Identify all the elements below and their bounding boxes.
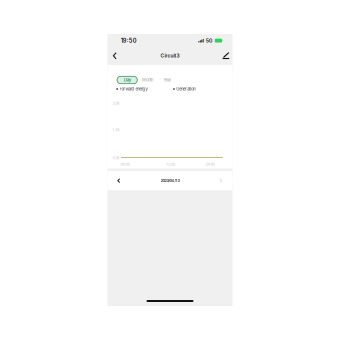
staticText: 24:00 xyxy=(205,162,214,167)
staticText: 2023/04/13 xyxy=(160,178,179,183)
button[interactable]: 2023/04/13 xyxy=(114,171,226,190)
staticText: 00:00 xyxy=(120,162,129,167)
staticText: 19:50 xyxy=(121,37,137,44)
staticText: Day xyxy=(124,77,131,83)
staticText: 3.0k xyxy=(112,101,119,105)
staticText: Forward energy xyxy=(119,86,147,91)
staticText: Generation xyxy=(176,86,195,91)
button[interactable]: Year xyxy=(162,76,173,84)
button[interactable]: Back xyxy=(109,49,120,62)
button[interactable]: Month xyxy=(140,76,154,84)
button[interactable]: Day xyxy=(117,76,137,84)
staticText: 12:00 xyxy=(166,162,175,167)
button[interactable]: Edit xyxy=(220,49,231,62)
staticText: Month xyxy=(142,77,153,82)
staticText: Circuit3 xyxy=(160,53,179,59)
staticText: 5G xyxy=(206,37,213,44)
staticText: Year xyxy=(163,77,171,82)
staticText: 0.0k xyxy=(112,155,119,160)
staticText: 1.5k xyxy=(112,128,119,132)
